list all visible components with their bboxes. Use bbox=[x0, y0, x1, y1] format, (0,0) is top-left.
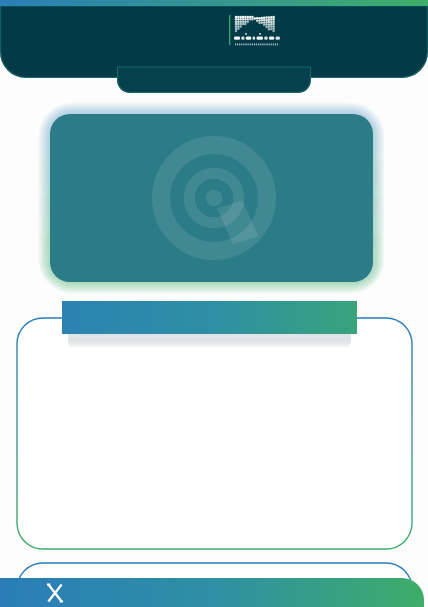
button[interactable]: Tab bbox=[117, 67, 311, 93]
button[interactable]: X (Twitter) bbox=[38, 578, 74, 607]
button[interactable]: Content card bbox=[17, 318, 412, 549]
button[interactable]: Banner card bbox=[50, 114, 373, 282]
